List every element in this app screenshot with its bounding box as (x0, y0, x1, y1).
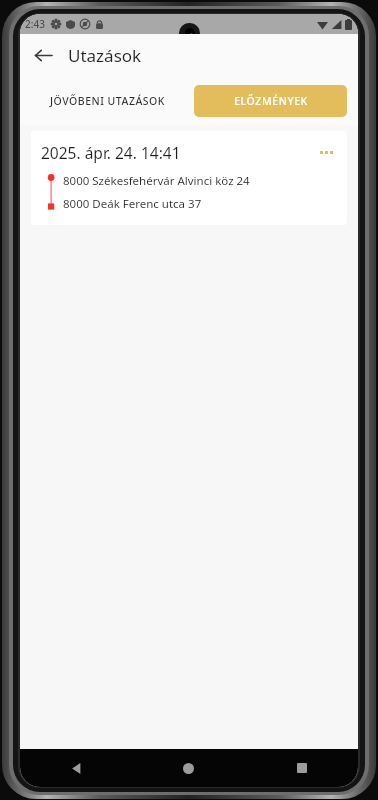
button[interactable]: Home (132, 749, 245, 787)
button[interactable]: ELŐZMÉNYEK (194, 85, 347, 117)
staticText: JÖVŐBENI UTAZÁSOK (50, 94, 165, 108)
staticText: 8000 Deák Ferenc utca 37 (63, 196, 202, 212)
staticText: 2:43 (25, 17, 45, 31)
button[interactable]: Recent apps (245, 749, 358, 787)
staticText: 8000 Székesfehérvár Alvinci köz 24 (63, 173, 250, 189)
button[interactable]: 2025. ápr. 24. 14:41 (31, 131, 347, 225)
button[interactable]: Back (20, 749, 132, 787)
button[interactable]: JÖVŐBENI UTAZÁSOK (31, 85, 184, 117)
button[interactable]: More options (313, 139, 339, 165)
button[interactable]: Back (26, 38, 60, 72)
staticText: ELŐZMÉNYEK (234, 94, 308, 108)
staticText: Utazások (68, 44, 142, 67)
staticText: 2025. ápr. 24. 14:41 (41, 142, 181, 163)
